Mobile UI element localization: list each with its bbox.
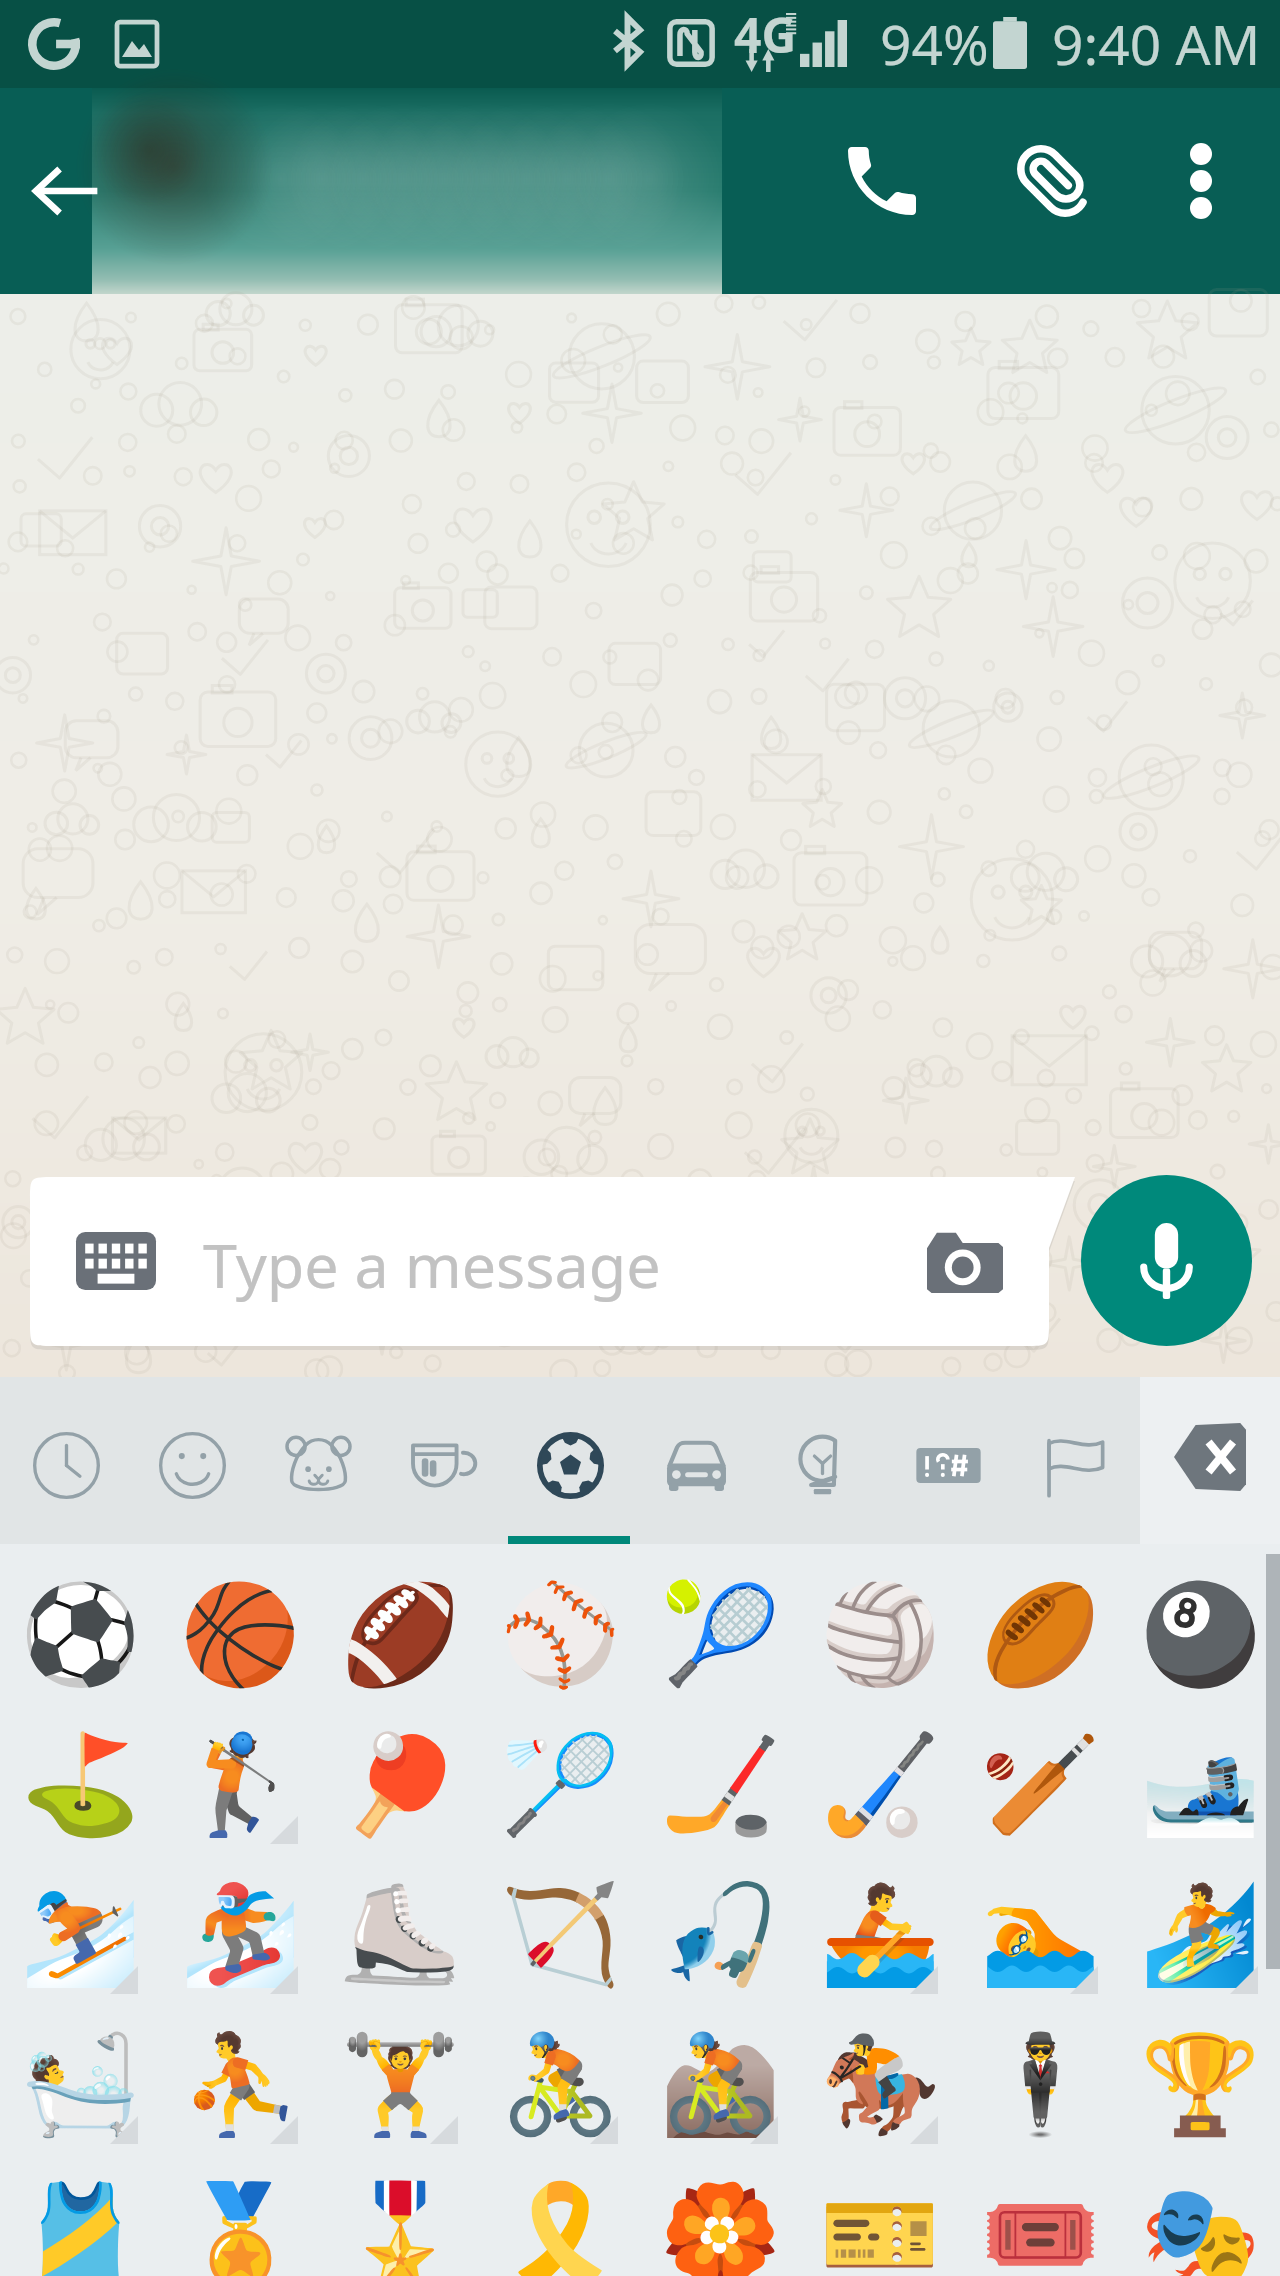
staticText: ⛹ xyxy=(180,2028,301,2142)
button[interactable] xyxy=(92,88,722,294)
button[interactable]: 🏄 xyxy=(1120,1860,1280,2010)
staticText: 🏏 xyxy=(980,1728,1101,1842)
button[interactable]: 🎫 xyxy=(800,2160,960,2276)
button[interactable]: ⚽ xyxy=(0,1560,160,1710)
button[interactable]: 🏂 xyxy=(160,1860,320,2010)
button[interactable]: Recent xyxy=(3,1377,129,1544)
button[interactable]: 🏋 xyxy=(320,2010,480,2160)
staticText: 🎽 xyxy=(20,2178,141,2276)
button[interactable]: Keyboard xyxy=(68,1213,164,1309)
staticText: 🎗 xyxy=(500,2178,621,2276)
button[interactable]: 🎗 xyxy=(480,2160,640,2276)
button[interactable]: 🎾 xyxy=(640,1560,800,1710)
button[interactable]: 🏆 xyxy=(1120,2010,1280,2160)
button[interactable]: ⛹ xyxy=(160,2010,320,2160)
button[interactable]: Symbols xyxy=(885,1377,1011,1544)
button[interactable]: 🕴 xyxy=(960,2010,1120,2160)
staticText: 🏂 xyxy=(180,1878,301,1992)
staticText: 🏹 xyxy=(500,1878,621,1992)
staticText: 🏋 xyxy=(340,2028,461,2142)
button[interactable]: 🏹 xyxy=(480,1860,640,2010)
button[interactable]: 🎟 xyxy=(960,2160,1120,2276)
button[interactable]: ⛳ xyxy=(0,1710,160,1860)
staticText: 🏄 xyxy=(1140,1878,1261,1992)
button[interactable]: ⛷ xyxy=(0,1860,160,2010)
button[interactable]: 🏌 xyxy=(160,1710,320,1860)
button[interactable]: 🚣 xyxy=(800,1860,960,2010)
button[interactable]: 🏸 xyxy=(480,1710,640,1860)
staticText: 🏈 xyxy=(340,1578,461,1692)
button[interactable]: Camera xyxy=(917,1213,1013,1309)
button[interactable]: Objects xyxy=(759,1377,885,1544)
button[interactable]: Smileys xyxy=(129,1377,255,1544)
button[interactable]: 🏒 xyxy=(640,1710,800,1860)
button[interactable]: 🎽 xyxy=(0,2160,160,2276)
button[interactable]: Record voice message xyxy=(1081,1175,1252,1346)
button[interactable]: 🚴 xyxy=(480,2010,640,2160)
staticText: ⛷ xyxy=(20,1878,141,1992)
staticText: 🏆 xyxy=(1140,2028,1261,2142)
staticText: 🎾 xyxy=(660,1578,781,1692)
staticText: 🏅 xyxy=(180,2178,301,2276)
button[interactable]: Travel xyxy=(633,1377,759,1544)
staticText: 🚣 xyxy=(820,1878,941,1992)
button[interactable]: 🏅 xyxy=(160,2160,320,2276)
button[interactable]: 🏉 xyxy=(960,1560,1120,1710)
staticText: 🏵 xyxy=(660,2178,781,2276)
button[interactable]: 🏑 xyxy=(800,1710,960,1860)
button[interactable]: 🏵 xyxy=(640,2160,800,2276)
button[interactable]: More options xyxy=(1142,121,1260,241)
staticText: ⚽ xyxy=(20,1578,141,1692)
staticText: 9:40 AM xyxy=(1052,6,1261,81)
button[interactable]: 🏏 xyxy=(960,1710,1120,1860)
staticText: 🕴 xyxy=(980,2028,1101,2142)
button[interactable]: 🏐 xyxy=(800,1560,960,1710)
button[interactable]: 🏈 xyxy=(320,1560,480,1710)
staticText: 🏑 xyxy=(820,1728,941,1842)
staticText: 🎟 xyxy=(980,2178,1101,2276)
button[interactable]: 🏊 xyxy=(960,1860,1120,2010)
button[interactable]: 🎿 xyxy=(1120,1710,1280,1860)
button[interactable]: Animals xyxy=(255,1377,381,1544)
staticText: 🚵 xyxy=(660,2028,781,2142)
button[interactable]: 🎣 xyxy=(640,1860,800,2010)
button[interactable]: Backspace xyxy=(1140,1377,1280,1544)
staticText: 🎭 xyxy=(1140,2178,1261,2276)
staticText: Type a message xyxy=(203,1223,661,1306)
button[interactable]: ⚾ xyxy=(480,1560,640,1710)
staticText: ⚾ xyxy=(500,1578,621,1692)
staticText: 🎣 xyxy=(660,1878,781,1992)
staticText: 🏌 xyxy=(180,1728,301,1842)
staticText: 🎿 xyxy=(1140,1728,1261,1842)
button[interactable]: 🎭 xyxy=(1120,2160,1280,2276)
staticText: 🏀 xyxy=(180,1578,301,1692)
button[interactable]: ⛸ xyxy=(320,1860,480,2010)
button[interactable]: Food xyxy=(381,1377,507,1544)
staticText: 🏉 xyxy=(980,1578,1101,1692)
button[interactable]: Attach xyxy=(993,121,1113,241)
staticText: 🏒 xyxy=(660,1728,781,1842)
staticText: 🎖 xyxy=(340,2178,461,2276)
staticText: 🏐 xyxy=(820,1578,941,1692)
staticText: 🎱 xyxy=(1140,1578,1261,1692)
button[interactable]: 🛀 xyxy=(0,2010,160,2160)
button[interactable]: 🏇 xyxy=(800,2010,960,2160)
button[interactable]: Flags xyxy=(1011,1377,1137,1544)
button[interactable]: 🚵 xyxy=(640,2010,800,2160)
button[interactable]: Back xyxy=(6,131,126,251)
button[interactable] xyxy=(30,1177,1075,1346)
button[interactable]: 🎱 xyxy=(1120,1560,1280,1710)
staticText: 🏸 xyxy=(500,1728,621,1842)
button[interactable]: Call xyxy=(822,121,942,241)
button[interactable]: 🎖 xyxy=(320,2160,480,2276)
staticText: ⛳ xyxy=(20,1728,141,1842)
staticText: 🏇 xyxy=(820,2028,941,2142)
button[interactable]: Activities xyxy=(507,1377,633,1544)
staticText: 94% xyxy=(880,6,989,81)
button[interactable]: 🏀 xyxy=(160,1560,320,1710)
button[interactable]: 🏓 xyxy=(320,1710,480,1860)
staticText: 4G xyxy=(734,2,797,62)
staticText: 🏊 xyxy=(980,1878,1101,1992)
staticText: 🎫 xyxy=(820,2178,941,2276)
staticText: 🚴 xyxy=(500,2028,621,2142)
